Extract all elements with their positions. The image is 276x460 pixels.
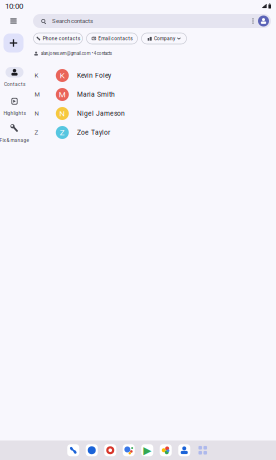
staticText: ∨ [92, 35, 95, 40]
button[interactable]: Contacts [178, 444, 190, 456]
staticText: Zoe Taylor [77, 129, 110, 136]
staticText: Z [60, 128, 65, 137]
staticText: Email contacts [98, 36, 132, 41]
staticText: Highlights [3, 110, 25, 116]
button[interactable]: Fix & manage [0, 123, 29, 143]
button[interactable]: More options [249, 15, 256, 27]
staticText: N [34, 110, 38, 117]
staticText: Fix & manage [0, 137, 29, 143]
staticText: Nigel Jameson [77, 110, 125, 117]
staticText: N [59, 109, 65, 118]
button[interactable]: Phone contacts [33, 33, 82, 44]
staticText: Z [34, 129, 38, 136]
staticText: Search contacts [52, 17, 93, 24]
button[interactable]: K [0, 66, 276, 85]
button[interactable]: Account [257, 15, 269, 27]
staticText: alan.jones.wm@gmail.com • 4 contacts [41, 51, 112, 56]
button[interactable]: Contacts [0, 67, 29, 87]
button[interactable]: Z [0, 123, 276, 142]
button[interactable]: Play Store [141, 444, 153, 456]
button[interactable]: ∨ [86, 33, 137, 44]
staticText: M [34, 91, 39, 98]
staticText: Kevin Foley [77, 72, 111, 79]
staticText: Maria Smith [77, 91, 115, 98]
button[interactable]: Chrome [104, 444, 116, 456]
staticText: Company [154, 36, 175, 41]
button[interactable]: Company [141, 33, 186, 44]
button[interactable]: Photos [123, 444, 135, 456]
button[interactable]: Open navigation drawer [6, 14, 20, 28]
staticText: M [59, 90, 66, 99]
staticText: ▶ [143, 444, 151, 456]
staticText: K [34, 72, 38, 79]
staticText: Contacts [4, 81, 25, 87]
staticText: K [60, 71, 65, 80]
button[interactable]: Messages [86, 444, 98, 456]
button[interactable]: Google Photos [160, 444, 172, 456]
staticText: 10:00 [5, 1, 23, 11]
button[interactable]: All apps [197, 444, 209, 456]
button[interactable]: M [0, 85, 276, 104]
button[interactable]: N [0, 104, 276, 123]
button[interactable]: Highlights [0, 96, 29, 116]
staticText: Phone contacts [43, 36, 80, 41]
button[interactable]: Phone [67, 444, 79, 456]
button[interactable]: Create contact [3, 33, 23, 52]
